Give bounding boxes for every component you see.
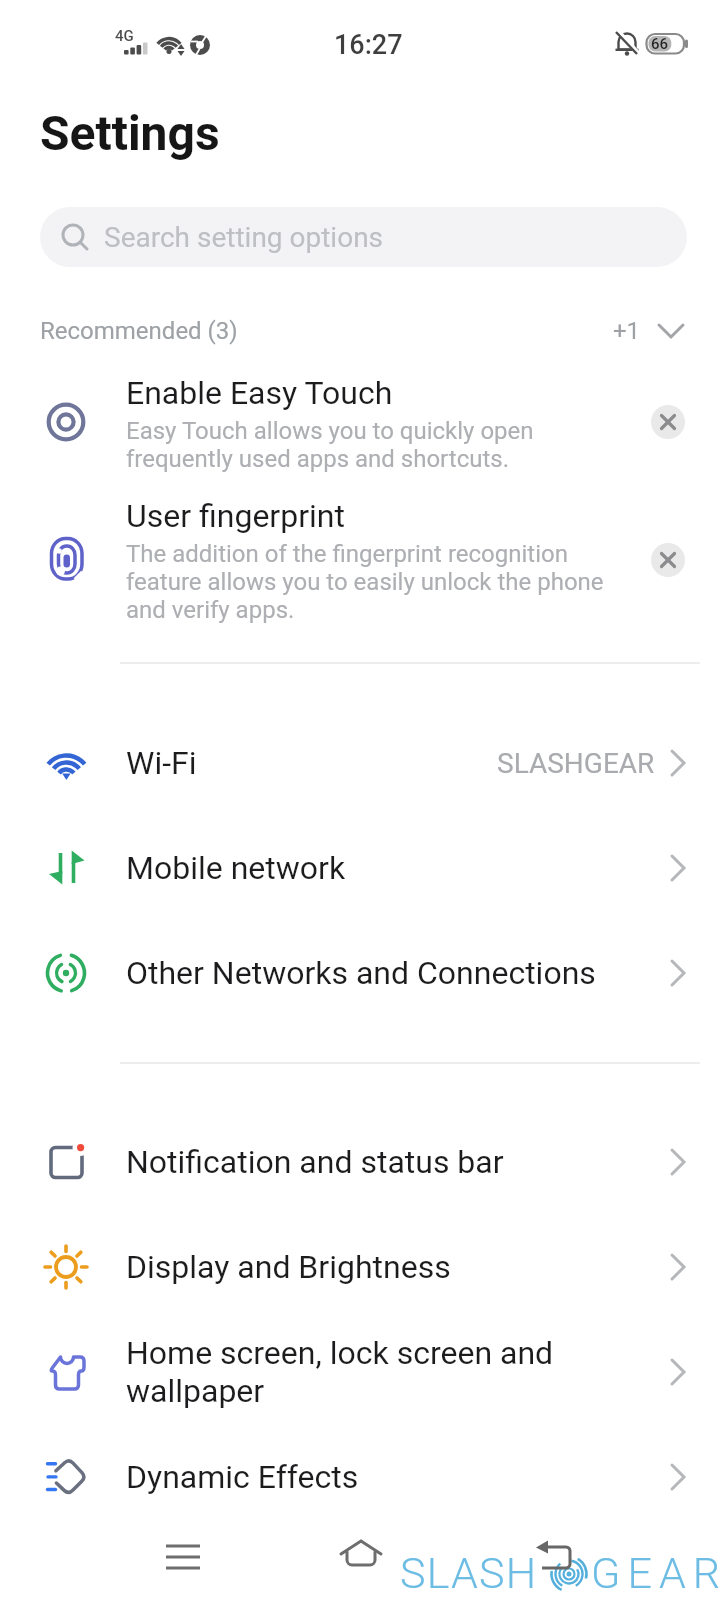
- staticText: +1: [613, 317, 641, 345]
- button[interactable]: [0, 495, 727, 625]
- staticText: Notification and status bar: [126, 1143, 504, 1181]
- staticText: The addition of the fingerprint recognit…: [126, 540, 604, 624]
- staticText: Dynamic Effects: [126, 1458, 359, 1496]
- staticText: Search setting options: [104, 221, 384, 254]
- button[interactable]: Notification and status bar: [0, 1110, 727, 1214]
- staticText: GEAR: [591, 1548, 727, 1598]
- button[interactable]: [133, 1510, 233, 1600]
- button[interactable]: Recommended (3): [0, 310, 727, 352]
- button[interactable]: [651, 543, 685, 577]
- button[interactable]: [506, 1510, 606, 1600]
- staticText: Recommended (3): [40, 317, 238, 345]
- button[interactable]: Search setting options: [40, 207, 687, 267]
- button[interactable]: Mobile network: [0, 816, 727, 920]
- button[interactable]: Other Networks and Connections: [0, 921, 727, 1025]
- staticText: Other Networks and Connections: [126, 954, 596, 992]
- staticText: Wi-Fi: [126, 744, 197, 782]
- staticText: Home screen, lock screen and wallpaper: [126, 1334, 554, 1410]
- staticText: SLASHGEAR: [497, 747, 655, 780]
- staticText: 4G: [115, 27, 134, 45]
- staticText: Mobile network: [126, 849, 346, 887]
- button[interactable]: [651, 405, 685, 439]
- staticText: Settings: [40, 105, 220, 161]
- button[interactable]: Wi-Fi: [0, 711, 727, 815]
- staticText: 16:27: [334, 29, 403, 61]
- button[interactable]: [0, 365, 727, 481]
- staticText: 66: [651, 35, 669, 53]
- staticText: SLASH: [400, 1548, 538, 1598]
- button[interactable]: Display and Brightness: [0, 1215, 727, 1319]
- staticText: Display and Brightness: [126, 1248, 451, 1286]
- button[interactable]: Home screen, lock screen and wallpaper: [0, 1320, 727, 1424]
- staticText: Easy Touch allows you to quickly open fr…: [126, 417, 534, 473]
- staticText: Enable Easy Touch: [126, 374, 393, 412]
- button[interactable]: Dynamic Effects: [0, 1425, 727, 1529]
- staticText: User fingerprint: [126, 497, 345, 535]
- button[interactable]: [311, 1510, 411, 1600]
